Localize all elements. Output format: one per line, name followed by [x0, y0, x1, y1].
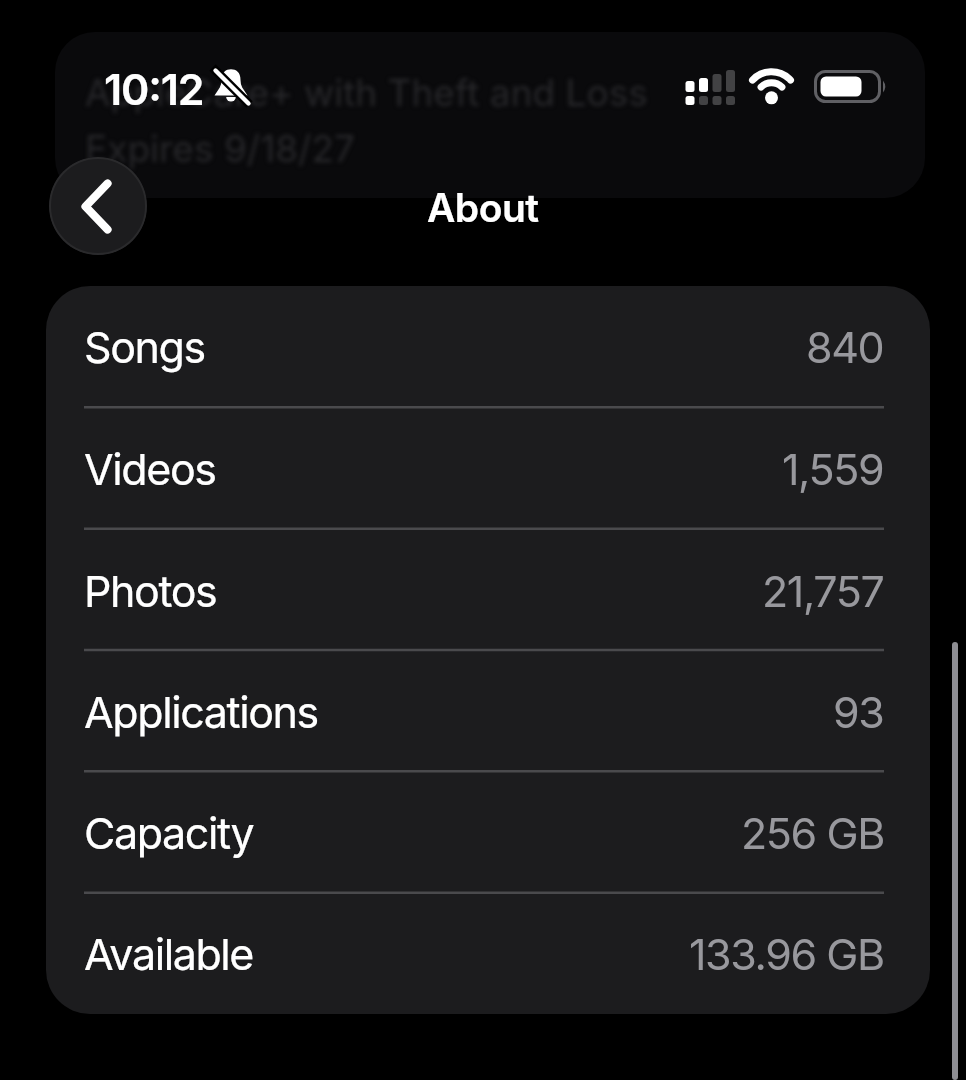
staticText: 93 [833, 686, 884, 738]
button[interactable]: Applications [84, 651, 884, 772]
staticText: Available [84, 928, 254, 980]
button[interactable]: Available [84, 893, 884, 1014]
staticText: 256 GB [741, 807, 884, 859]
staticText: 10:12 [104, 63, 204, 115]
button[interactable]: Photos [84, 530, 884, 651]
button[interactable]: Songs [84, 286, 884, 408]
staticText: 1,559 [782, 443, 884, 495]
button[interactable] [49, 157, 147, 255]
staticText: Photos [84, 565, 217, 617]
staticText: AppleCare+ with Theft and Loss [85, 70, 648, 115]
staticText: Videos [84, 443, 216, 495]
staticText: Capacity [84, 807, 254, 859]
staticText: 840 [806, 321, 884, 373]
button[interactable]: Videos [84, 408, 884, 530]
staticText: 133.96 GB [689, 928, 884, 980]
staticText: Expires 9/18/27 [85, 126, 355, 171]
staticText: About [427, 184, 539, 231]
staticText: Applications [84, 686, 318, 738]
staticText: Songs [84, 321, 205, 373]
staticText: 21,757 [762, 565, 884, 617]
button[interactable]: Capacity [84, 772, 884, 893]
